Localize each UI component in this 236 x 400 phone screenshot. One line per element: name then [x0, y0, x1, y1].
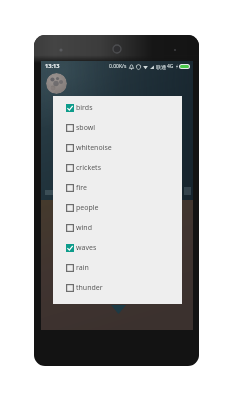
staticText: 4G [167, 63, 174, 70]
staticText: rain [76, 263, 89, 273]
staticText: crickets [76, 163, 101, 173]
button[interactable]: waves [53, 238, 182, 258]
staticText: thunder [76, 283, 103, 293]
staticText: 联通 [156, 64, 166, 70]
button[interactable]: people [53, 198, 182, 218]
staticText: sbowl [76, 123, 96, 133]
button[interactable]: thunder [53, 278, 182, 298]
staticText: 0.00K/s [109, 63, 127, 70]
staticText: wind [76, 223, 92, 233]
button[interactable]: rain [53, 258, 182, 278]
staticText: waves [76, 243, 97, 253]
staticText: people [76, 203, 99, 213]
button[interactable]: wind [53, 218, 182, 238]
button[interactable]: sbowl [53, 118, 182, 138]
button[interactable]: fire [53, 178, 182, 198]
staticText: whitenoise [76, 143, 112, 153]
button[interactable]: whitenoise [53, 138, 182, 158]
staticText: birds [76, 103, 93, 113]
staticText: fire [76, 183, 87, 193]
button[interactable]: crickets [53, 158, 182, 178]
staticText: 13:13 [45, 62, 60, 70]
button[interactable]: birds [53, 98, 182, 118]
